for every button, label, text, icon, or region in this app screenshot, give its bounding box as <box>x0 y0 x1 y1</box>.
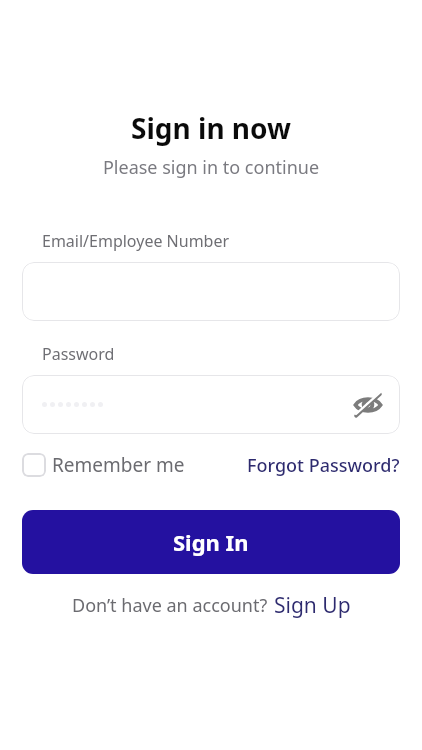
staticText: Please sign in to continue <box>22 155 400 180</box>
button[interactable]: Remember me <box>22 452 185 478</box>
button[interactable] <box>22 262 400 321</box>
staticText: Sign Up <box>274 591 351 620</box>
staticText: Email/Employee Number <box>42 230 230 252</box>
staticText: Forgot Password? <box>247 453 400 478</box>
staticText: Remember me <box>52 452 185 478</box>
staticText: Sign In <box>173 527 249 557</box>
staticText: Password <box>42 343 115 365</box>
button[interactable]: Toggle password visibility <box>348 385 388 425</box>
button[interactable]: Forgot Password? <box>247 453 400 478</box>
button[interactable]: Sign In <box>22 510 400 574</box>
staticText: Sign in now <box>22 109 400 147</box>
button[interactable]: Sign Up <box>274 591 351 620</box>
staticText: Don’t have an account? <box>72 593 268 618</box>
button[interactable]: Toggle password visibility <box>22 375 400 434</box>
